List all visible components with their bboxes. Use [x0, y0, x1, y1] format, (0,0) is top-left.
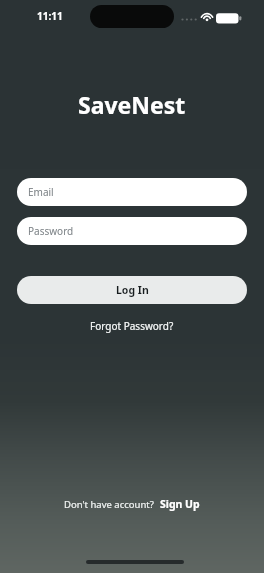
staticText: Password — [28, 224, 74, 238]
staticText: Sign Up — [160, 497, 200, 511]
staticText: SaveNest — [78, 89, 186, 120]
staticText: Log In — [116, 283, 149, 297]
button[interactable]: Log In — [17, 276, 247, 304]
staticText: Email — [28, 185, 54, 199]
staticText: 11:11 — [37, 9, 63, 23]
button[interactable]: Don't have account? — [64, 497, 200, 511]
button[interactable]: Email — [17, 178, 247, 206]
button[interactable]: Password — [17, 217, 247, 245]
staticText: Don't have account? — [64, 498, 154, 511]
button[interactable]: Forgot Password? — [90, 319, 174, 333]
